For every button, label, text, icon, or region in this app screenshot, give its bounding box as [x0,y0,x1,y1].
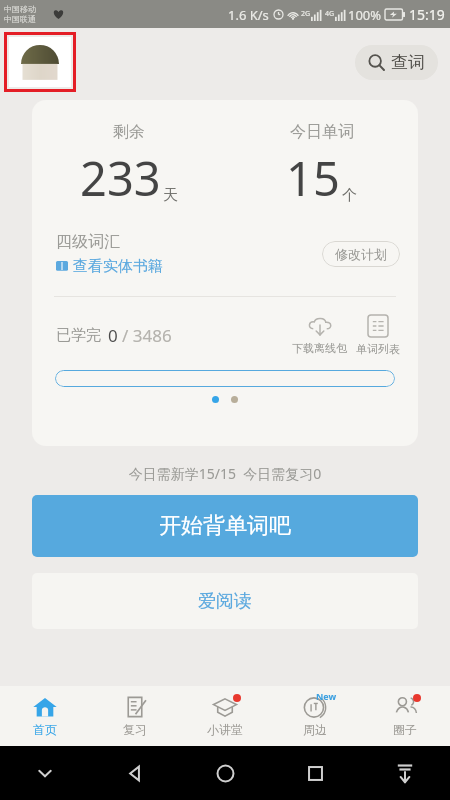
staticText: New [316,690,337,702]
button[interactable]: Recent apps [270,746,360,800]
button[interactable]: 圈子 [360,686,450,746]
staticText: 小讲堂 [207,722,243,737]
button[interactable]: Hide keyboard [0,746,90,800]
staticText: 复习 [123,722,147,737]
button[interactable]: 小讲堂 [180,686,270,746]
staticText: 个 [342,186,357,205]
button[interactable]: 下载离线包 [292,317,347,355]
button[interactable]: Back [90,746,180,800]
staticText: 4G [325,9,335,19]
staticText: 查词 [391,52,425,73]
staticText: / 3486 [122,324,172,347]
button[interactable]: 查词 [355,45,438,80]
staticText: 单词列表 [356,342,400,356]
button[interactable]: Profile avatar [9,37,71,87]
staticText: 周边 [303,722,327,737]
staticText: 233 [80,146,161,210]
staticText: 圈子 [393,722,417,737]
staticText: 下载离线包 [292,341,347,355]
staticText: 15:19 [409,5,445,24]
staticText: 15 [286,146,340,210]
button[interactable]: 复习 [90,686,180,746]
staticText: 100% [348,6,382,24]
staticText: 今日单词 [290,122,354,142]
staticText: 首页 [33,722,57,737]
staticText: 中国移动 [4,4,36,14]
staticText: 0 [108,324,118,347]
button[interactable]: 爱阅读 [32,573,418,629]
button[interactable]: New [270,686,360,746]
staticText: 1.6 K/s [228,6,269,24]
staticText: 剩余 [113,122,145,142]
staticText: 中国联通 [4,14,36,24]
staticText: 2G [301,9,311,19]
button[interactable]: 修改计划 [322,241,400,267]
staticText: 开始背单词吧 [159,512,291,540]
staticText: 已学完 [56,326,101,345]
button[interactable]: 开始背单词吧 [32,495,418,557]
button[interactable]: Home [180,746,270,800]
staticText: 四级词汇 [56,232,120,252]
button[interactable]: 查看实体书籍 [56,257,163,276]
staticText: 查看实体书籍 [73,257,163,276]
staticText: 爱阅读 [198,590,252,613]
button[interactable]: Pull down notifications [360,746,450,800]
button[interactable]: 单词列表 [356,315,400,356]
staticText: 今日需新学15/15 今日需复习0 [0,464,450,483]
button[interactable]: 首页 [0,686,90,746]
staticText: 修改计划 [335,246,387,262]
staticText: 天 [163,186,178,205]
